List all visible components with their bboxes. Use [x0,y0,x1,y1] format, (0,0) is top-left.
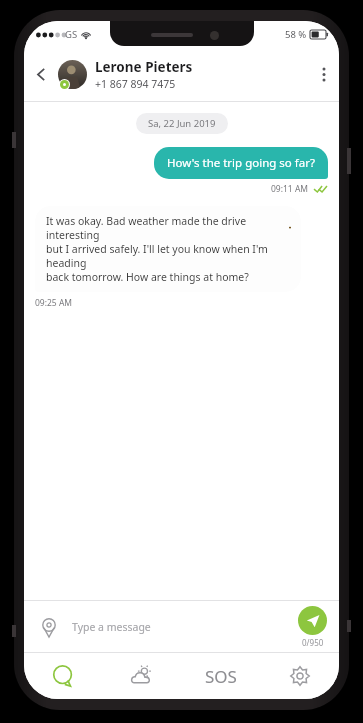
staticText: Type a message [72,620,151,634]
button[interactable]: Chat [24,653,102,699]
button[interactable]: Send [298,606,327,635]
button[interactable]: Settings [260,653,339,699]
staticText: How's the trip going so far? [167,155,315,171]
button[interactable]: Type a message [72,620,298,634]
button[interactable]: Share location [37,615,61,639]
staticText: 58 % [285,28,307,41]
staticText: 09:25 AM [35,297,73,309]
staticText: 09:11 AM [271,183,309,195]
button[interactable]: More options [309,47,339,101]
staticText: +1 867 894 7475 [95,77,176,91]
staticText: GS [65,28,78,41]
staticText: Sa, 22 Jun 2019 [148,117,216,130]
staticText: back tomorrow. How are things at home? [46,270,249,284]
button[interactable]: How's the trip going so far? [154,147,328,179]
button[interactable]: It was okay. Bad weather made the drive … [35,206,301,292]
staticText: but I arrived safely. I'll let you know … [46,242,290,270]
staticText: 0/950 [302,637,324,648]
button[interactable]: Back [24,47,58,101]
staticText: It was okay. Bad weather made the drive … [46,214,290,242]
button[interactable]: SOS [181,653,260,699]
button[interactable]: Weather [102,653,181,699]
staticText: SOS [205,665,237,688]
staticText: Lerone Pieters [95,58,193,76]
